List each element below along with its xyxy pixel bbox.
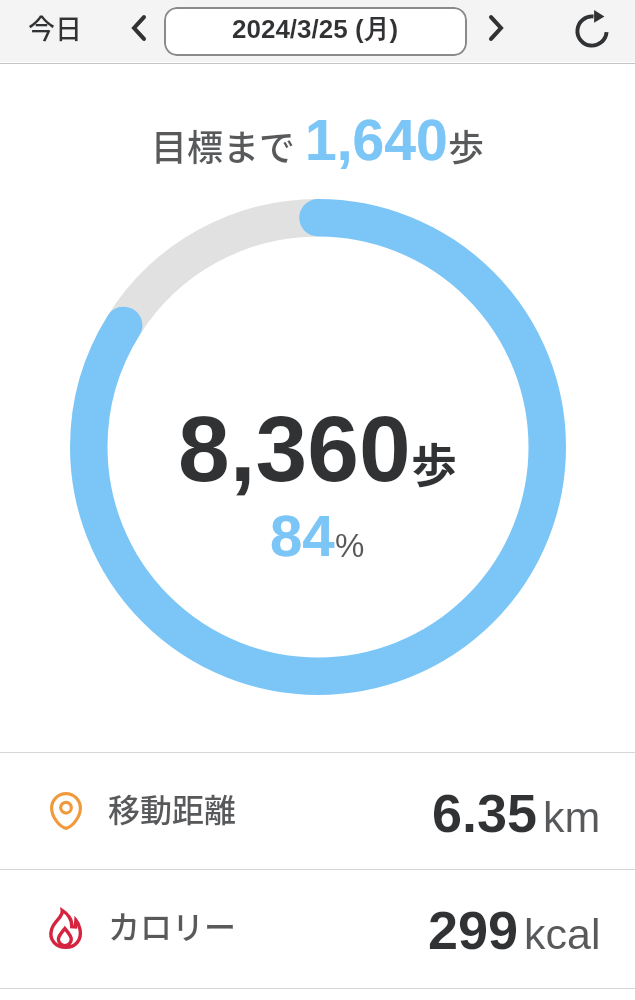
staticText: 84 [270, 503, 335, 568]
staticText: 1,640 [305, 108, 448, 172]
staticText: % [335, 527, 365, 564]
staticText: 移動距離 [108, 785, 237, 831]
staticText: km [543, 793, 601, 841]
staticText: 6.35 [432, 783, 538, 843]
staticText: 8,360 [178, 397, 411, 501]
button[interactable]: Previous day [118, 7, 160, 49]
button[interactable]: 2024/3/25 (月) [164, 7, 467, 56]
staticText: 歩 [448, 119, 485, 171]
button[interactable]: 今日 [0, 1, 110, 62]
button[interactable]: Refresh [566, 5, 618, 57]
button[interactable]: カロリー [0, 870, 635, 986]
staticText: 2024/3/25 (月) [232, 13, 399, 46]
staticText: 299 [428, 900, 519, 960]
staticText: 目標まで [151, 119, 296, 171]
button[interactable]: 移動距離 [0, 753, 635, 869]
staticText: カロリー [108, 902, 237, 948]
staticText: 歩 [411, 429, 457, 496]
staticText: 今日 [28, 8, 82, 47]
button[interactable]: Next day [475, 7, 517, 49]
staticText: kcal [524, 910, 601, 958]
